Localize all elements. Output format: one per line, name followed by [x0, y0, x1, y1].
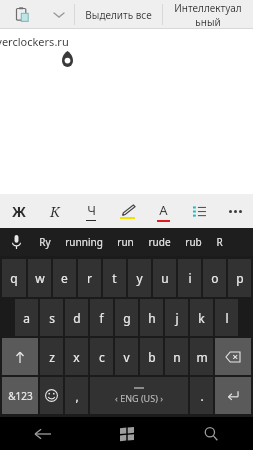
button[interactable]: q: [2, 259, 26, 297]
staticText: w: [35, 270, 45, 286]
button[interactable]: Back: [0, 417, 85, 450]
button[interactable]: a: [15, 299, 38, 336]
button[interactable]: Numbers and symbols: [2, 377, 38, 414]
button[interactable]: Underline: [73, 194, 109, 228]
button[interactable]: x: [65, 338, 88, 375]
staticText: i: [188, 270, 192, 286]
button[interactable]: More options: [217, 194, 253, 228]
button[interactable]: Voice input: [0, 228, 32, 256]
staticText: A: [159, 201, 168, 219]
staticText: k: [198, 310, 205, 326]
staticText: z: [49, 349, 55, 365]
button[interactable]: Выделить все: [75, 0, 162, 29]
button[interactable]: Backspace: [215, 338, 251, 375]
button[interactable]: Shift: [2, 338, 38, 375]
button[interactable]: j: [165, 299, 188, 336]
button[interactable]: running: [58, 228, 110, 256]
staticText: v: [123, 349, 130, 365]
button[interactable]: o: [203, 259, 226, 297]
staticText: .: [200, 388, 204, 404]
staticText: o: [211, 270, 219, 286]
button[interactable]: r: [78, 259, 101, 297]
staticText: a: [23, 310, 30, 326]
button[interactable]: Space: [90, 377, 188, 414]
staticText: g: [123, 310, 131, 326]
button[interactable]: w: [28, 259, 51, 297]
staticText: run: [117, 235, 134, 249]
staticText: Ч: [87, 201, 96, 219]
button[interactable]: Paste options: [44, 0, 74, 29]
button[interactable]: rub: [178, 228, 209, 256]
staticText: e: [61, 270, 68, 286]
button[interactable]: h: [140, 299, 163, 336]
staticText: y: [136, 270, 143, 286]
button[interactable]: Ry: [32, 228, 58, 256]
button[interactable]: i: [178, 259, 201, 297]
button[interactable]: Search: [169, 417, 253, 450]
staticText: Ж: [12, 202, 26, 221]
button[interactable]: s: [40, 299, 63, 336]
staticText: ‹ ENG (US) ›: [115, 392, 163, 404]
button[interactable]: Font color: [145, 194, 181, 228]
button[interactable]: n: [165, 338, 188, 375]
button[interactable]: R: [209, 228, 230, 256]
button[interactable]: Emoji: [40, 377, 63, 414]
button[interactable]: Start: [85, 417, 169, 450]
button[interactable]: e: [53, 259, 76, 297]
staticText: rude: [148, 235, 171, 249]
staticText: &123: [8, 389, 33, 403]
button[interactable]: p: [228, 259, 251, 297]
button[interactable]: t: [103, 259, 126, 297]
button[interactable]: k: [190, 299, 213, 336]
staticText: x: [73, 349, 80, 365]
button[interactable]: d: [65, 299, 88, 336]
staticText: r: [87, 270, 92, 286]
button[interactable]: Paste: [0, 0, 44, 29]
button[interactable]: b: [140, 338, 163, 375]
button[interactable]: Period: [190, 377, 213, 414]
staticText: u: [161, 270, 169, 286]
staticText: n: [173, 349, 181, 365]
button[interactable]: c: [90, 338, 113, 375]
button[interactable]: Bold: [0, 194, 37, 228]
button[interactable]: m: [190, 338, 213, 375]
button[interactable]: rude: [141, 228, 178, 256]
staticText: p: [236, 270, 244, 286]
staticText: ,: [75, 388, 79, 404]
button[interactable]: l: [215, 299, 238, 336]
staticText: Выделить все: [85, 8, 152, 22]
staticText: t: [112, 270, 117, 286]
staticText: К: [50, 202, 60, 221]
staticText: b: [148, 349, 156, 365]
button[interactable]: f: [90, 299, 113, 336]
button[interactable]: v: [115, 338, 138, 375]
button[interactable]: Enter: [215, 377, 251, 414]
button[interactable]: y: [128, 259, 151, 297]
button[interactable]: Comma: [65, 377, 88, 414]
staticText: j: [175, 310, 179, 326]
staticText: d: [73, 310, 81, 326]
staticText: q: [10, 270, 18, 286]
button[interactable]: List: [181, 194, 217, 228]
staticText: Ry: [39, 235, 51, 249]
button[interactable]: g: [115, 299, 138, 336]
staticText: Интеллектуальный: [173, 1, 243, 29]
staticText: c: [99, 349, 105, 365]
button[interactable]: z: [40, 338, 63, 375]
staticText: f: [99, 310, 104, 326]
button[interactable]: run: [110, 228, 141, 256]
button[interactable]: u: [153, 259, 176, 297]
staticText: R: [216, 235, 223, 249]
staticText: rub: [185, 235, 202, 249]
staticText: running: [65, 235, 103, 249]
button[interactable]: Highlight: [109, 194, 145, 228]
button[interactable]: Italic: [37, 194, 73, 228]
staticText: verclockers.ru: [0, 34, 69, 49]
button[interactable]: Интеллектуальный: [163, 0, 253, 29]
staticText: l: [225, 310, 229, 326]
staticText: s: [49, 310, 55, 326]
staticText: m: [196, 349, 208, 365]
staticText: h: [148, 310, 156, 326]
